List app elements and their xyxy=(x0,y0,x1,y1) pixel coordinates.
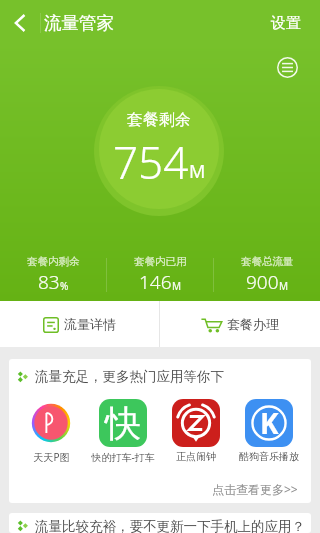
staticText: 快 xyxy=(105,401,141,446)
staticText: 146 xyxy=(139,269,172,295)
staticText: M xyxy=(172,279,182,293)
button[interactable]: 正点闹钟 xyxy=(159,399,232,463)
staticText: 流量详情 xyxy=(64,316,116,332)
button[interactable]: 天天P图 xyxy=(15,399,87,464)
staticText: 套餐剩余 xyxy=(127,110,191,130)
button[interactable]: 设置 xyxy=(267,10,305,37)
staticText: 套餐内剩余 xyxy=(27,255,80,268)
staticText: 套餐办理 xyxy=(227,316,279,332)
button[interactable]: 流量充足，更多热门应用等你下 xyxy=(9,359,311,503)
staticText: 流量比较充裕，要不更新一下手机上的应用？ xyxy=(35,518,305,533)
staticText: 套餐内已用 xyxy=(134,255,187,268)
staticText: 正点闹钟 xyxy=(176,450,216,463)
button[interactable]: Menu xyxy=(277,57,298,78)
button[interactable]: 流量比较充裕，要不更新一下手机上的应用？ xyxy=(9,513,311,533)
staticText: 天天P图 xyxy=(33,450,70,464)
button[interactable]: 套餐内剩余 xyxy=(0,255,106,295)
button[interactable]: 快 xyxy=(87,399,159,464)
button[interactable]: 流量详情 xyxy=(0,301,159,347)
button[interactable]: Back xyxy=(0,2,40,44)
staticText: 83 xyxy=(38,269,60,295)
staticText: K xyxy=(260,404,279,442)
staticText: M xyxy=(279,279,289,293)
staticText: 流量管家 xyxy=(44,12,114,34)
staticText: M xyxy=(189,159,206,184)
staticText: 酷狗音乐播放 xyxy=(239,450,299,463)
button[interactable]: 套餐内已用 xyxy=(107,255,213,295)
button[interactable]: 套餐办理 xyxy=(160,301,320,347)
button[interactable]: K xyxy=(232,399,305,463)
staticText: 快的打车-打车 xyxy=(91,450,155,464)
staticText: 套餐总流量 xyxy=(241,255,294,268)
staticText: 流量充足，更多热门应用等你下 xyxy=(35,368,224,385)
staticText: 754 xyxy=(113,132,189,192)
staticText: 900 xyxy=(246,269,279,295)
button[interactable]: 套餐总流量 xyxy=(214,255,320,295)
staticText: 设置 xyxy=(271,14,301,33)
staticText: % xyxy=(60,279,69,293)
staticText: 点击查看更多>> xyxy=(212,481,298,497)
